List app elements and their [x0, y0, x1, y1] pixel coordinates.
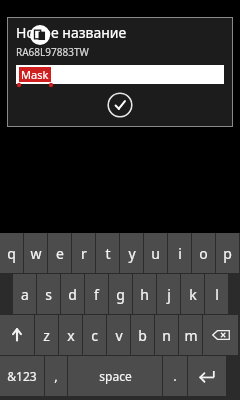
button[interactable]: q [0, 233, 23, 273]
button[interactable]: m [179, 315, 202, 355]
button[interactable]: h [133, 274, 156, 314]
staticText: space [99, 368, 132, 384]
button[interactable]: Mask [16, 65, 224, 84]
staticText: RA68L97883TW [16, 45, 89, 59]
button[interactable]: j [157, 274, 180, 314]
staticText: w [30, 244, 42, 263]
button[interactable]: g [109, 274, 132, 314]
button[interactable]: b [131, 315, 154, 355]
button[interactable]: y [120, 233, 143, 273]
button[interactable]: p [216, 233, 239, 273]
button[interactable]: f [85, 274, 108, 314]
button[interactable]: t [96, 233, 119, 273]
button[interactable]: v [107, 315, 130, 355]
button[interactable]: , [45, 356, 67, 396]
staticText: , [54, 367, 58, 385]
staticText: l [215, 285, 219, 304]
button[interactable]: . [163, 356, 187, 396]
button[interactable]: w [24, 233, 47, 273]
button[interactable]: Enter [188, 356, 226, 396]
staticText: . [173, 367, 177, 385]
staticText: &123 [7, 368, 37, 384]
staticText: p [223, 244, 232, 263]
button[interactable]: e [48, 233, 71, 273]
button[interactable]: Shift [0, 315, 34, 355]
button[interactable]: s [37, 274, 60, 314]
staticText: q [7, 244, 16, 263]
staticText: v [115, 326, 123, 345]
staticText: Новое название [16, 23, 127, 42]
staticText: o [199, 244, 208, 263]
button[interactable]: o [192, 233, 215, 273]
staticText: g [116, 285, 125, 304]
staticText: u [151, 244, 160, 263]
button[interactable]: u [144, 233, 167, 273]
staticText: z [43, 326, 50, 345]
staticText: s [45, 285, 52, 304]
staticText: h [140, 285, 149, 304]
button[interactable]: a [13, 274, 36, 314]
staticText: r [81, 244, 87, 263]
button[interactable]: space [68, 356, 162, 396]
button[interactable]: i [168, 233, 191, 273]
staticText: y [128, 244, 136, 263]
staticText: b [138, 326, 147, 345]
button[interactable]: &123 [0, 356, 44, 396]
button[interactable]: c [83, 315, 106, 355]
staticText: m [184, 326, 198, 345]
staticText: j [167, 285, 171, 304]
staticText: i [178, 244, 182, 263]
staticText: f [94, 285, 99, 304]
staticText: e [56, 244, 64, 263]
button[interactable]: n [155, 315, 178, 355]
staticText: n [162, 326, 171, 345]
button[interactable]: z [35, 315, 58, 355]
staticText: k [189, 285, 197, 304]
staticText: t [105, 244, 111, 263]
staticText: d [68, 285, 77, 304]
button[interactable]: x [59, 315, 82, 355]
staticText: a [21, 285, 29, 304]
staticText: c [91, 326, 98, 345]
button[interactable]: Copy [30, 25, 50, 45]
staticText: x [67, 326, 75, 345]
button[interactable]: k [181, 274, 204, 314]
button[interactable]: Backspace [203, 315, 238, 355]
button[interactable]: l [205, 274, 228, 314]
button[interactable]: Confirm [107, 92, 133, 118]
staticText: Mask [21, 67, 49, 82]
button[interactable]: r [72, 233, 95, 273]
button[interactable]: d [61, 274, 84, 314]
